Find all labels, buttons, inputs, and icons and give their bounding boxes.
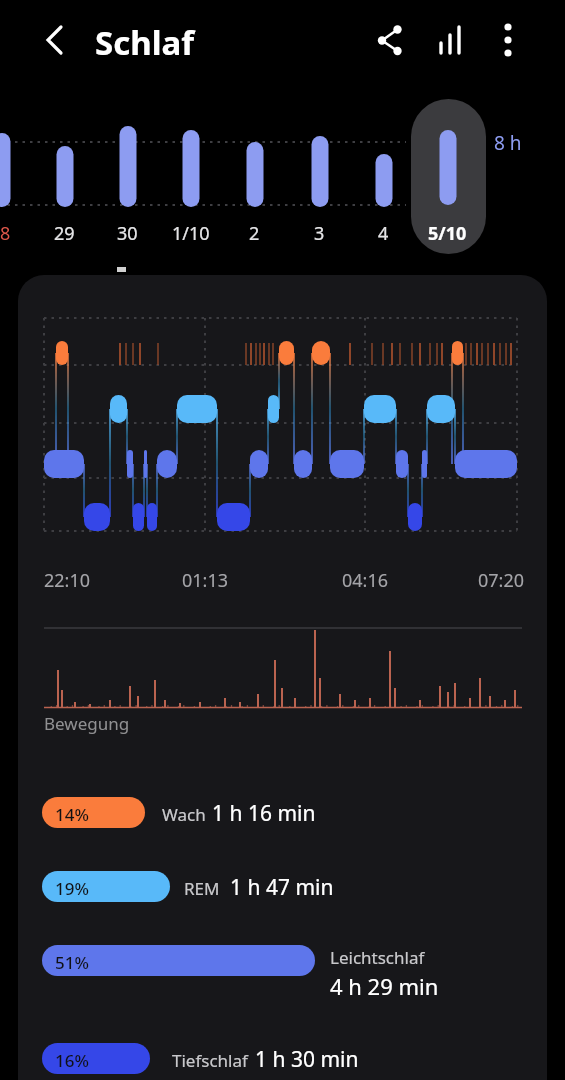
- button[interactable]: [30, 864, 530, 912]
- button[interactable]: [417, 100, 479, 250]
- staticText: 29: [54, 221, 75, 246]
- button[interactable]: [30, 18, 76, 64]
- button[interactable]: [30, 938, 530, 1008]
- staticText: 22:10: [44, 568, 91, 593]
- staticText: Schlaf: [95, 20, 195, 65]
- button[interactable]: [224, 100, 286, 250]
- staticText: 1 h 30 min: [255, 1045, 359, 1074]
- button[interactable]: [160, 100, 222, 250]
- staticText: 16%: [55, 1049, 89, 1072]
- button[interactable]: [486, 15, 530, 65]
- staticText: 01:13: [182, 568, 229, 593]
- button[interactable]: [30, 790, 530, 838]
- button[interactable]: [34, 100, 96, 250]
- staticText: 14%: [55, 803, 89, 826]
- button[interactable]: [353, 100, 415, 250]
- staticText: 1/10: [172, 221, 210, 246]
- staticText: 4 h 29 min: [330, 971, 439, 1001]
- staticText: 8 h: [494, 130, 522, 156]
- button[interactable]: [428, 15, 474, 65]
- staticText: 5/10: [428, 221, 467, 246]
- staticText: 1 h 16 min: [212, 799, 316, 828]
- staticText: 8: [0, 221, 11, 246]
- button[interactable]: [0, 100, 33, 250]
- staticText: Bewegung: [44, 712, 130, 735]
- staticText: 3: [314, 221, 325, 246]
- button[interactable]: [97, 100, 159, 250]
- staticText: 1 h 47 min: [230, 873, 334, 902]
- staticText: REM: [184, 877, 220, 900]
- button[interactable]: [289, 100, 351, 250]
- button[interactable]: [372, 15, 422, 65]
- staticText: 51%: [55, 951, 89, 974]
- staticText: 4: [378, 221, 389, 246]
- staticText: 19%: [55, 877, 89, 900]
- staticText: 30: [117, 221, 138, 246]
- staticText: Wach: [162, 803, 206, 826]
- button[interactable]: [30, 1036, 530, 1080]
- staticText: 07:20: [478, 568, 525, 593]
- staticText: Leichtschlaf: [330, 946, 425, 969]
- staticText: Tiefschlaf: [172, 1049, 248, 1072]
- staticText: 2: [249, 221, 260, 246]
- staticText: 04:16: [342, 568, 389, 593]
